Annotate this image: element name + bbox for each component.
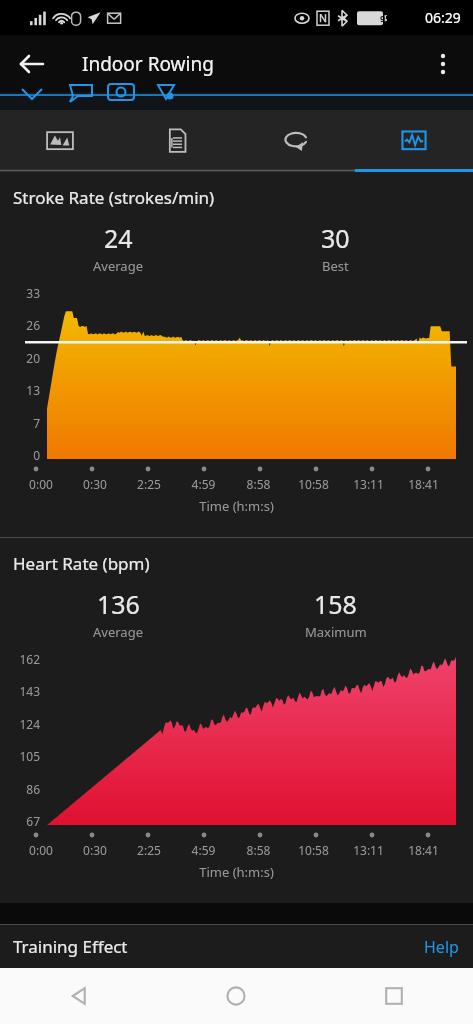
staticText: 10:58 — [286, 842, 341, 858]
staticText: 0:00 — [14, 476, 68, 492]
staticText: 06:29 — [425, 8, 461, 27]
staticText: Heart Rate (bpm) — [13, 552, 150, 575]
staticText: 2:25 — [122, 842, 176, 858]
staticText: 67 — [0, 813, 40, 829]
staticText: 18:41 — [396, 476, 451, 492]
button[interactable]: Charts tab — [355, 110, 473, 172]
staticText: Average — [93, 623, 143, 641]
staticText: 86 — [0, 781, 40, 797]
staticText: 4:59 — [176, 842, 231, 858]
staticText: 2:25 — [122, 476, 176, 492]
staticText: 26 — [0, 317, 40, 333]
staticText: Time (h:m:s) — [0, 863, 473, 881]
staticText: Training Effect — [13, 935, 128, 958]
staticText: 0:30 — [68, 476, 122, 492]
button[interactable]: Details tab — [119, 110, 237, 172]
button[interactable]: Home — [157, 968, 315, 1024]
button[interactable]: More options — [421, 42, 465, 86]
staticText: 124 — [0, 716, 40, 732]
staticText: 13:11 — [341, 842, 396, 858]
button[interactable]: Back — [10, 42, 54, 86]
staticText: 0:30 — [68, 842, 122, 858]
staticText: Help — [424, 936, 459, 958]
staticText: Time (h:m:s) — [0, 497, 473, 515]
staticText: Best — [322, 257, 349, 275]
staticText: 24 — [104, 221, 133, 255]
button[interactable]: Training Effect — [0, 925, 473, 968]
staticText: 33 — [0, 285, 40, 301]
staticText: 10:58 — [286, 476, 341, 492]
staticText: 18:41 — [396, 842, 451, 858]
staticText: 136 — [97, 587, 140, 621]
staticText: 105 — [0, 748, 40, 764]
staticText: Indoor Rowing — [82, 51, 214, 77]
staticText: 8:58 — [231, 842, 286, 858]
staticText: 7 — [0, 415, 40, 431]
staticText: 95 — [380, 12, 391, 24]
staticText: Stroke Rate (strokes/min) — [13, 186, 215, 209]
button[interactable]: Recent apps — [315, 968, 473, 1024]
staticText: 162 — [0, 651, 40, 667]
staticText: 143 — [0, 683, 40, 699]
button[interactable]: Laps tab — [237, 110, 355, 172]
staticText: 0 — [0, 447, 40, 463]
staticText: Maximum — [305, 623, 367, 641]
staticText: 30 — [321, 221, 350, 255]
staticText: 20 — [0, 350, 40, 366]
staticText: Average — [93, 257, 143, 275]
staticText: 13 — [0, 382, 40, 398]
button[interactable]: Back — [0, 968, 157, 1024]
staticText: 0:00 — [14, 842, 68, 858]
staticText: 13:11 — [341, 476, 396, 492]
staticText: 158 — [314, 587, 357, 621]
button[interactable]: Map tab — [0, 110, 119, 172]
staticText: 4:59 — [176, 476, 231, 492]
staticText: 8:58 — [231, 476, 286, 492]
